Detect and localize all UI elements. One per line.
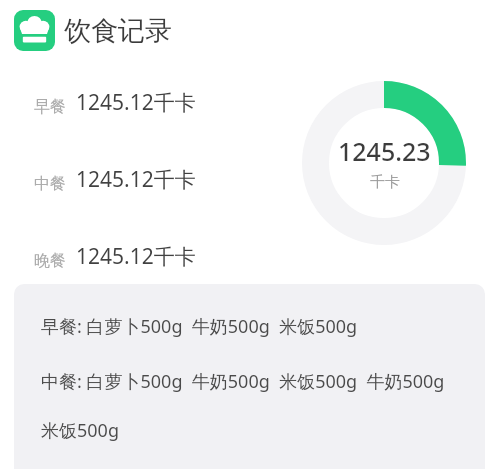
button[interactable]: 早餐: 白萝卜500g 牛奶500g 米饭500g (14, 284, 485, 469)
staticText: 早餐 (34, 97, 66, 117)
staticText: 1245.12千卡 (76, 242, 196, 271)
button[interactable]: 早餐 (34, 86, 196, 119)
staticText: 晚餐 (34, 251, 66, 271)
staticText: 千卡 (370, 173, 400, 192)
staticText: 1245.23 (338, 134, 431, 168)
button[interactable]: Diet record (12, 8, 174, 53)
staticText: 1245.12千卡 (76, 165, 196, 194)
other: Diet record (14, 10, 55, 51)
button[interactable]: 晚餐 (34, 240, 196, 273)
staticText: 中餐 (34, 174, 66, 194)
staticText: 饮食记录 (64, 14, 172, 48)
staticText: 1245.12千卡 (76, 88, 196, 117)
button[interactable]: 中餐 (34, 163, 196, 196)
button[interactable]: Total calories chart (302, 81, 466, 245)
staticText: 中餐: 白萝卜500g 牛奶500g 米饭500g 牛奶500g 米饭500g (41, 369, 456, 442)
staticText: 早餐: 白萝卜500g 牛奶500g 米饭500g (41, 314, 358, 339)
